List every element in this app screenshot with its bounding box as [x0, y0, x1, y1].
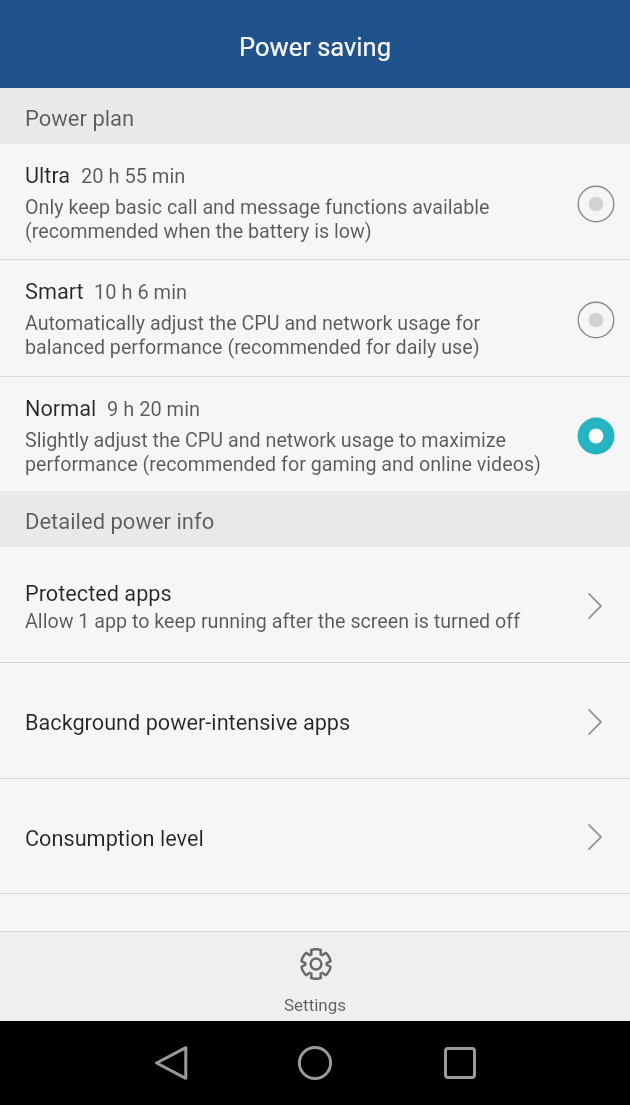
button[interactable]: Back	[148, 1039, 196, 1087]
staticText: Consumption level	[25, 826, 204, 851]
button[interactable]: Ultra	[0, 144, 630, 259]
staticText: Settings	[284, 995, 347, 1015]
staticText: Automatically adjust the CPU and network…	[25, 312, 481, 359]
button[interactable]: Consumption level	[0, 779, 630, 893]
staticText: Allow 1 app to keep running after the sc…	[25, 610, 521, 633]
staticText: Smart	[25, 279, 84, 304]
button[interactable]: Home	[291, 1039, 339, 1087]
button[interactable]: Smart	[0, 260, 630, 376]
staticText: 20 h 55 min	[81, 164, 186, 187]
button[interactable]: Recent apps	[436, 1039, 484, 1087]
staticText: Only keep basic call and message functio…	[25, 196, 490, 243]
staticText: Power plan	[25, 106, 135, 132]
staticText: 9 h 20 min	[107, 397, 201, 420]
button[interactable]: Settings	[0, 932, 630, 1021]
staticText: Power saving	[239, 32, 391, 62]
button[interactable]: Background power-intensive apps	[0, 663, 630, 778]
staticText: Slightly adjust the CPU and network usag…	[25, 429, 541, 476]
staticText: Background power-intensive apps	[25, 710, 351, 735]
staticText: Detailed power info	[25, 509, 215, 535]
staticText: 10 h 6 min	[94, 280, 188, 303]
button[interactable]: Protected apps	[0, 547, 630, 662]
staticText: Protected apps	[25, 581, 172, 606]
staticText: Ultra	[25, 163, 71, 188]
button[interactable]: Normal	[0, 377, 630, 491]
staticText: Normal	[25, 396, 97, 421]
